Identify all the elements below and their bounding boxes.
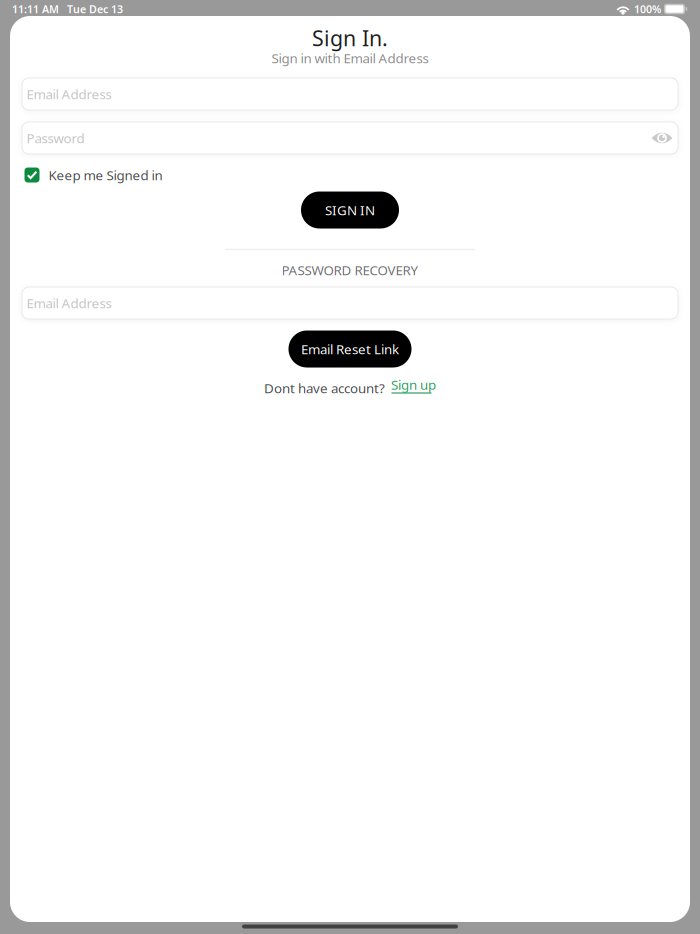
staticText: Sign up bbox=[391, 376, 436, 393]
staticText: Keep me Signed in bbox=[48, 166, 162, 184]
staticText: Email Address bbox=[26, 85, 111, 103]
staticText: Tue Dec 13 bbox=[67, 2, 123, 16]
staticText: Sign In. bbox=[312, 24, 388, 52]
staticText: Email Reset Link bbox=[301, 340, 399, 358]
staticText: Dont have account? bbox=[264, 379, 385, 397]
staticText: Email Address bbox=[26, 294, 111, 312]
staticText: 100% bbox=[634, 2, 661, 16]
button[interactable]: SIGN IN bbox=[301, 191, 399, 228]
button[interactable]: Sign up bbox=[391, 375, 447, 397]
staticText: SIGN IN bbox=[325, 201, 375, 219]
staticText: 11:11 AM bbox=[12, 2, 59, 16]
button[interactable]: Email Reset Link bbox=[288, 330, 411, 367]
button[interactable]: Show password bbox=[645, 123, 679, 153]
button[interactable]: Keep me Signed in bbox=[24, 163, 199, 187]
staticText: PASSWORD RECOVERY bbox=[281, 261, 418, 279]
staticText: Sign in with Email Address bbox=[271, 49, 428, 67]
staticText: Password bbox=[26, 129, 84, 147]
